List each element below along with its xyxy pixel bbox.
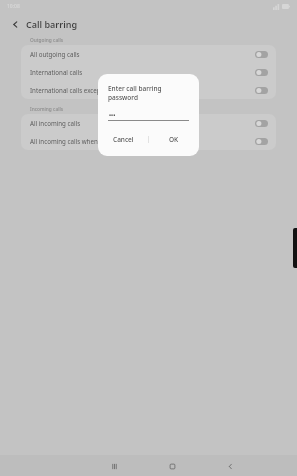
button[interactable]: All incoming calls [21,114,276,132]
button[interactable]: Toggle [255,51,268,58]
staticText: All incoming calls when roaming [30,137,251,145]
button[interactable]: Recents [104,456,124,476]
staticText: International calls [30,68,251,76]
button[interactable]: International calls [21,63,276,81]
button[interactable]: Back [220,456,240,476]
button[interactable]: Edge panel handle [293,228,297,268]
button[interactable]: Home [162,456,182,476]
button[interactable]: Back [7,16,23,32]
staticText: All outgoing calls [30,50,251,58]
button[interactable]: OK [149,130,199,148]
button[interactable]: All outgoing calls [21,45,276,63]
staticText: Cancel [113,135,134,144]
staticText: All incoming calls [30,119,251,127]
staticText: Incoming calls [30,106,64,113]
button[interactable]: Toggle [255,87,268,94]
button[interactable]: Toggle [255,69,268,76]
button[interactable]: Cancel [98,130,148,148]
button[interactable]: Toggle [255,120,268,127]
staticText: International calls except to home count… [30,86,251,94]
button[interactable]: Toggle [255,138,268,145]
staticText: Enter call barring password [108,84,189,102]
button[interactable]: All incoming calls when roaming [21,132,276,150]
button[interactable]: International calls except to home count… [21,81,276,99]
staticText: ••• [109,111,116,118]
staticText: 10:08 [7,3,20,10]
staticText: Outgoing calls [30,37,64,44]
staticText: Call barring [26,18,78,30]
staticText: OK [169,135,179,144]
